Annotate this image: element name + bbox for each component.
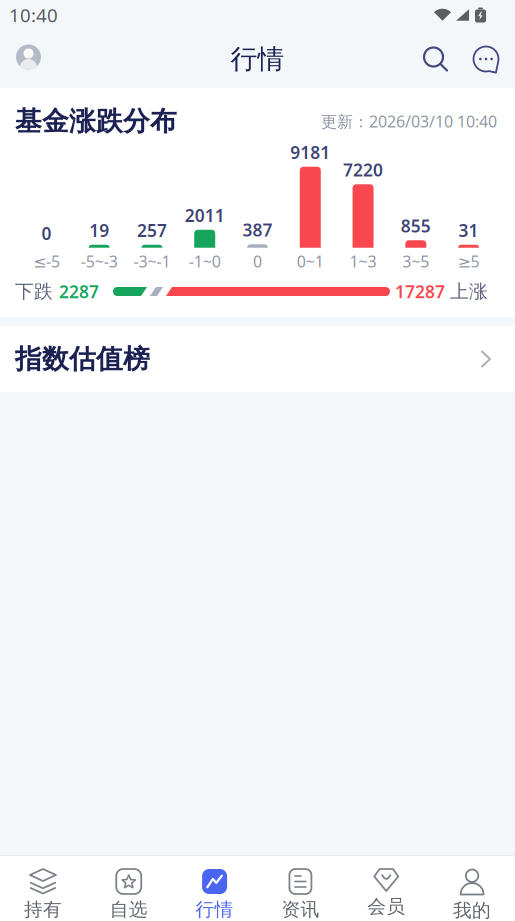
staticText: 我的 <box>453 899 491 921</box>
button[interactable]: Messages <box>472 45 500 73</box>
staticText: 行情 <box>196 898 234 921</box>
button[interactable]: Profile <box>16 46 41 71</box>
staticText: 2287 <box>59 280 99 303</box>
staticText: 10:40 <box>9 3 58 27</box>
button[interactable]: 会员 <box>343 856 429 921</box>
button[interactable]: 自选 <box>86 856 172 921</box>
staticText: 0~1 <box>297 251 324 272</box>
staticText: 行情 <box>230 43 284 75</box>
button[interactable]: 行情 <box>172 856 257 921</box>
staticText: ≥5 <box>458 251 480 272</box>
staticText: -3~-1 <box>133 251 170 272</box>
staticText: 持有 <box>24 898 62 921</box>
staticText: 资讯 <box>281 898 319 921</box>
staticText: 855 <box>401 214 431 237</box>
button[interactable]: 我的 <box>429 856 515 921</box>
staticText: 更新：2026/03/10 10:40 <box>321 111 497 132</box>
staticText: ≤-5 <box>33 251 60 272</box>
staticText: 9181 <box>290 141 330 164</box>
staticText: 31 <box>459 219 479 242</box>
button[interactable]: 资讯 <box>257 856 343 921</box>
staticText: 指数估值榜 <box>15 343 150 375</box>
staticText: 下跌 <box>15 280 53 303</box>
staticText: 0 <box>41 222 51 245</box>
staticText: 387 <box>242 218 272 241</box>
button[interactable]: Search <box>423 46 448 71</box>
staticText: 3~5 <box>402 251 429 272</box>
staticText: 7220 <box>343 158 383 181</box>
staticText: -1~0 <box>189 251 221 272</box>
staticText: 2011 <box>185 204 225 227</box>
staticText: 0 <box>253 251 262 272</box>
staticText: 基金涨跌分布 <box>15 105 177 138</box>
staticText: 19 <box>89 219 109 242</box>
button[interactable]: 指数估值榜 <box>0 326 515 392</box>
staticText: 17287 <box>395 280 445 303</box>
staticText: 1~3 <box>350 251 377 272</box>
staticText: 上涨 <box>450 280 488 303</box>
staticText: 自选 <box>110 898 148 921</box>
staticText: 257 <box>137 219 167 242</box>
staticText: 会员 <box>367 895 405 918</box>
staticText: -5~-3 <box>81 251 118 272</box>
button[interactable]: 持有 <box>0 856 86 921</box>
